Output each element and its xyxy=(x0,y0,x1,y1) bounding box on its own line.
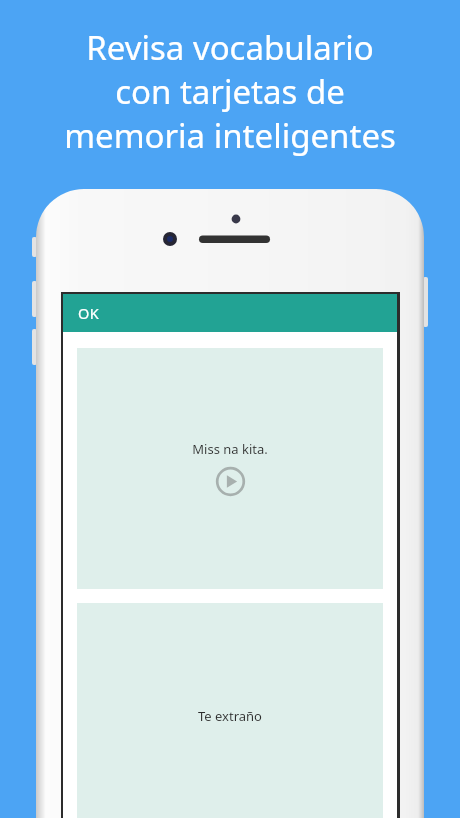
button[interactable]: Play pronunciation xyxy=(215,466,246,497)
staticText: Te extraño xyxy=(198,707,262,725)
staticText: OK xyxy=(78,303,100,323)
staticText: Revisa vocabulario xyxy=(86,25,374,69)
button[interactable]: Miss na kita. xyxy=(77,348,383,589)
button[interactable]: Te extraño xyxy=(77,603,383,818)
staticText: memoria inteligentes xyxy=(64,113,396,157)
staticText: Miss na kita. xyxy=(192,440,268,458)
button[interactable]: OK xyxy=(63,294,397,332)
staticText: con tarjetas de xyxy=(115,69,345,113)
